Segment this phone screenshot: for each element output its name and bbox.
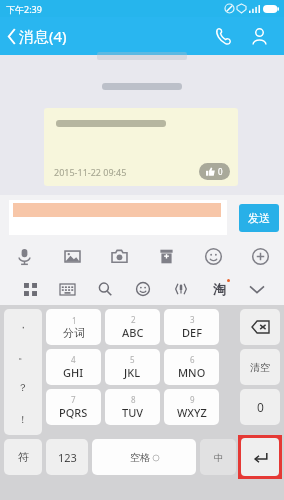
button[interactable]: 淘	[200, 273, 238, 305]
button[interactable]: Keyboard	[49, 273, 86, 305]
button[interactable]: Apps grid	[12, 273, 49, 305]
button[interactable]: 9	[164, 389, 219, 425]
button[interactable]: Collapse keyboard	[238, 273, 276, 305]
button[interactable]: ！	[4, 403, 42, 435]
button[interactable]: 空格	[92, 439, 196, 475]
staticText: MNO	[178, 365, 206, 380]
button[interactable]: Photo	[48, 240, 96, 273]
button[interactable]: 8	[105, 389, 160, 425]
staticText: 中	[214, 452, 223, 463]
button[interactable]: 3	[164, 309, 219, 345]
button[interactable]: More	[237, 240, 284, 273]
staticText: 下午2:39	[6, 3, 42, 15]
staticText: 123	[58, 450, 77, 465]
button[interactable]: 7	[46, 389, 101, 425]
button[interactable]: 1	[46, 309, 101, 345]
staticText: 0	[257, 399, 264, 415]
button[interactable]: 符	[4, 439, 42, 475]
staticText: 3	[190, 314, 195, 325]
button[interactable]: 4	[46, 349, 101, 385]
staticText: 4	[71, 354, 76, 365]
staticText: ？	[18, 381, 28, 394]
staticText: 。	[18, 349, 28, 362]
button[interactable]: Voice input	[162, 273, 200, 305]
staticText: 8	[131, 394, 136, 405]
staticText: 分词	[63, 326, 85, 340]
button[interactable]: 2	[105, 309, 160, 345]
button[interactable]: Search	[86, 273, 124, 305]
staticText: WXYZ	[177, 405, 207, 420]
button[interactable]: 6	[164, 349, 219, 385]
staticText: 6	[190, 354, 195, 365]
staticText: 7	[71, 394, 76, 405]
staticText: GHI	[63, 365, 84, 380]
staticText: TUV	[122, 405, 144, 420]
staticText: 9	[190, 394, 195, 405]
button[interactable]: ？	[4, 371, 42, 403]
button[interactable]: 0	[240, 389, 280, 425]
staticText: PQRS	[59, 405, 88, 420]
button[interactable]: 中	[200, 439, 236, 475]
staticText: 空格	[130, 451, 150, 464]
button[interactable]: 清空	[240, 349, 280, 385]
staticText: 1	[72, 315, 77, 326]
staticText: 2015-11-22 09:45	[54, 166, 127, 178]
button[interactable]: Contact profile	[244, 21, 274, 51]
button[interactable]: 5	[105, 349, 160, 385]
staticText: ABC	[122, 325, 144, 340]
staticText: JKL	[124, 365, 141, 380]
button[interactable]: 发送	[239, 204, 279, 232]
button[interactable]	[9, 200, 227, 235]
staticText: 5	[130, 354, 135, 365]
button[interactable]: Enter	[241, 438, 279, 476]
staticText: 淘	[213, 281, 226, 297]
staticText: DEF	[182, 325, 202, 340]
button[interactable]: Backspace	[240, 309, 280, 345]
button[interactable]: Call	[208, 21, 238, 51]
staticText: 发送	[248, 211, 270, 225]
button[interactable]: 0	[199, 163, 230, 180]
button[interactable]: Emoticons	[124, 273, 162, 305]
button[interactable]: Camera	[96, 240, 143, 273]
button[interactable]: Voice message	[0, 240, 48, 273]
staticText: 0	[218, 166, 223, 177]
staticText: 符	[18, 450, 29, 464]
button[interactable]: ，	[4, 309, 42, 340]
button[interactable]: Gift	[143, 240, 190, 273]
staticText: 清空	[250, 361, 270, 374]
staticText: ，	[18, 318, 28, 331]
staticText: 2	[131, 314, 136, 325]
button[interactable]: 2015-11-22 09:45	[44, 108, 238, 186]
button[interactable]: 123	[46, 439, 88, 475]
button[interactable]: Emoji	[190, 240, 237, 273]
staticText: 消息(4)	[19, 26, 67, 46]
button[interactable]: 消息(4)	[6, 22, 69, 50]
staticText: ！	[18, 413, 28, 426]
button[interactable]: 。	[4, 340, 42, 371]
